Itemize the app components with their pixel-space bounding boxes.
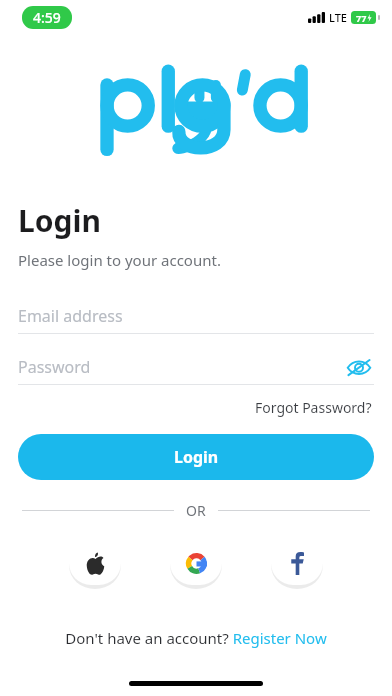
button[interactable]: Sign in with Google (170, 541, 222, 585)
staticText: Please login to your account. (18, 250, 221, 270)
staticText: Don't have an account? Register Now (65, 628, 327, 648)
staticText: Login (18, 200, 101, 241)
staticText: Email address (18, 305, 123, 327)
staticText: Forgot Password? (255, 398, 372, 417)
staticText: Password (18, 356, 91, 378)
staticText: Login (174, 446, 219, 468)
button[interactable]: Sign in with Apple (69, 541, 121, 585)
button[interactable]: Email address (18, 299, 374, 334)
button[interactable]: Forgot Password? (253, 395, 374, 420)
staticText: OR (186, 501, 206, 520)
staticText: 4:59 (33, 8, 61, 27)
button[interactable]: Login (18, 434, 374, 480)
button[interactable]: Sign in with Facebook (271, 541, 323, 585)
button[interactable]: Show password (344, 352, 374, 382)
staticText: LTE (329, 10, 347, 25)
button[interactable]: Don't have an account? Register Now (0, 628, 392, 648)
staticText: 77 (356, 12, 367, 24)
button[interactable]: Password (18, 350, 374, 385)
